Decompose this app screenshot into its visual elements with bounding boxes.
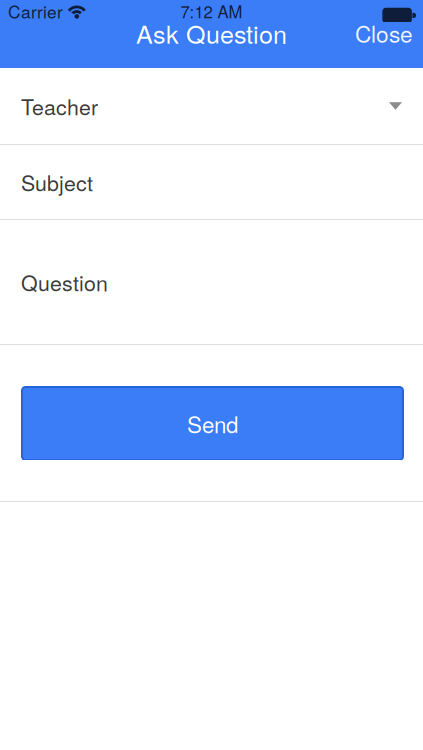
- button[interactable]: Subject: [0, 145, 423, 219]
- staticText: Carrier: [8, 0, 63, 23]
- staticText: Question: [21, 267, 108, 297]
- button[interactable]: Close: [341, 8, 423, 58]
- staticText: Ask Question: [136, 15, 287, 51]
- staticText: 7:12 AM: [180, 0, 242, 23]
- staticText: Teacher: [21, 91, 98, 121]
- button[interactable]: Send: [22, 387, 403, 460]
- button[interactable]: Teacher: [0, 68, 423, 144]
- staticText: Subject: [21, 167, 93, 197]
- staticText: Close: [355, 17, 413, 49]
- button[interactable]: Question: [0, 220, 423, 344]
- staticText: Send: [187, 407, 238, 440]
